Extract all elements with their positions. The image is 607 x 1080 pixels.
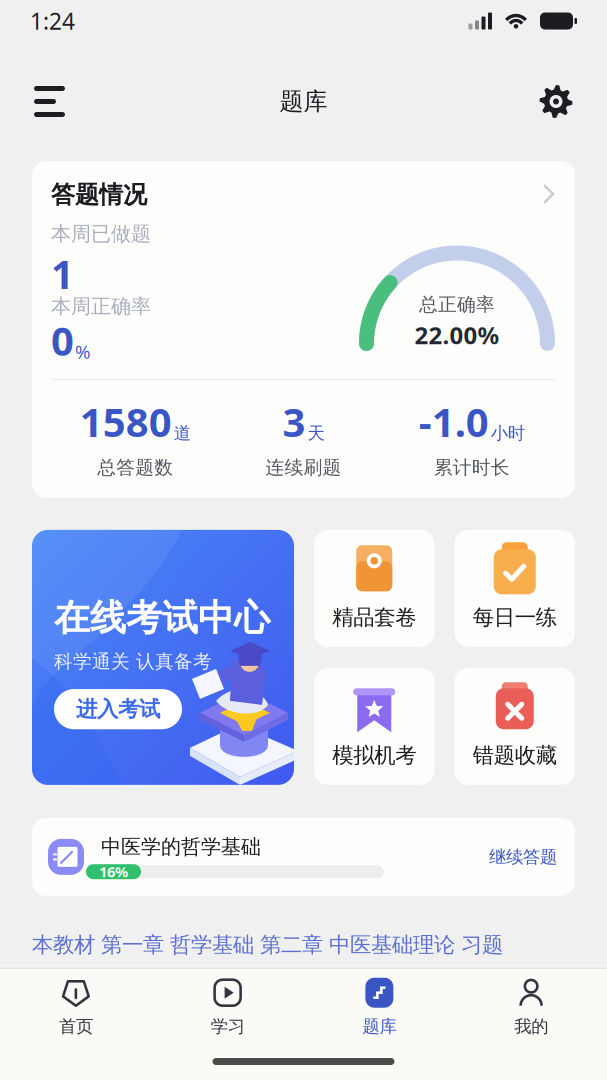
staticText: 每日一练 bbox=[473, 604, 557, 630]
staticText: 天 bbox=[307, 423, 324, 444]
button[interactable]: 学习 bbox=[152, 977, 304, 1037]
staticText: 在线考试中心 bbox=[54, 596, 270, 640]
button[interactable]: 每日一练 bbox=[454, 530, 575, 647]
staticText: 累计时长 bbox=[434, 456, 510, 479]
staticText: 精品套卷 bbox=[332, 604, 416, 630]
button[interactable]: 首页 bbox=[0, 977, 152, 1037]
staticText: -1.0 bbox=[419, 395, 489, 448]
staticText: 首页 bbox=[59, 1016, 93, 1037]
staticText: 答题情况 bbox=[51, 180, 147, 209]
button[interactable]: 中医学的哲学基础 bbox=[32, 818, 575, 896]
staticText: 连续刷题 bbox=[265, 456, 341, 479]
staticText: 本周正确率 bbox=[51, 294, 151, 319]
staticText: 0 bbox=[51, 314, 74, 367]
staticText: 本周已做题 bbox=[51, 221, 151, 246]
staticText: 错题收藏 bbox=[473, 742, 557, 768]
staticText: 16% bbox=[99, 862, 128, 881]
staticText: 题库 bbox=[362, 1016, 396, 1037]
staticText: 1:24 bbox=[30, 6, 75, 36]
button[interactable]: 模拟机考 bbox=[314, 668, 434, 785]
staticText: 中医学的哲学基础 bbox=[101, 835, 261, 859]
staticText: 模拟机考 bbox=[332, 742, 416, 768]
staticText: 1580 bbox=[80, 395, 172, 448]
staticText: 进入考试 bbox=[76, 696, 160, 722]
staticText: 学习 bbox=[211, 1016, 245, 1037]
staticText: 题库 bbox=[279, 87, 327, 116]
staticText: 22.00% bbox=[414, 319, 499, 351]
staticText: 本教材 第一章 哲学基础 第二章 中医基础理论 习题 bbox=[32, 932, 503, 958]
staticText: 3 bbox=[282, 395, 305, 448]
staticText: 总正确率 bbox=[419, 293, 495, 316]
button[interactable]: 在线考试中心 bbox=[32, 530, 294, 785]
staticText: 小时 bbox=[491, 423, 525, 444]
staticText: 1 bbox=[51, 247, 74, 300]
staticText: 道 bbox=[174, 423, 191, 444]
staticText: 科学通关 认真备考 bbox=[54, 650, 212, 673]
button[interactable]: 精品套卷 bbox=[314, 530, 434, 647]
staticText: % bbox=[75, 339, 91, 364]
button[interactable]: 错题收藏 bbox=[454, 668, 575, 785]
staticText: 我的 bbox=[514, 1016, 548, 1037]
staticText: 总答题数 bbox=[97, 456, 173, 479]
button[interactable]: 答题情况 bbox=[32, 161, 575, 498]
button[interactable]: 题库 bbox=[303, 977, 455, 1037]
button[interactable]: 我的 bbox=[455, 977, 607, 1037]
staticText: 继续答题 bbox=[489, 846, 557, 867]
button[interactable]: Menu bbox=[34, 84, 68, 118]
button[interactable]: Settings bbox=[539, 84, 573, 118]
